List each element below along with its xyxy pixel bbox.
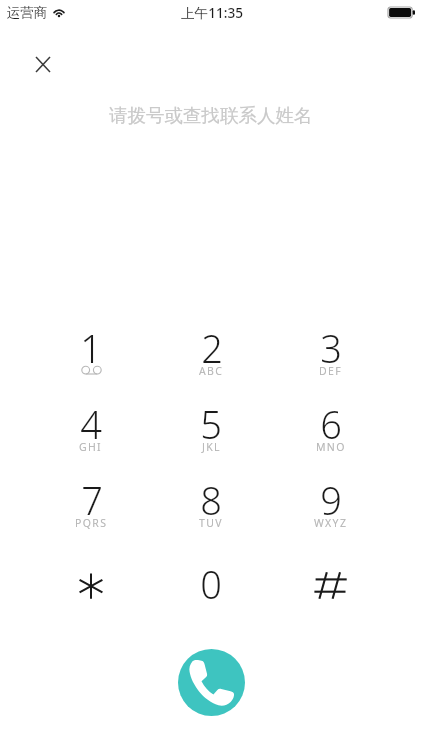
staticText: 5 (200, 398, 222, 450)
staticText: WXYZ (314, 516, 348, 530)
staticText: 2 (201, 322, 223, 374)
button[interactable]: 3 DEF (271, 322, 391, 396)
staticText: 8 (200, 474, 222, 526)
button[interactable]: 6 MNO (271, 398, 391, 472)
staticText: 运营商 (7, 4, 48, 21)
staticText: 请拨号或查找联系人姓名 (109, 104, 313, 127)
button[interactable]: 0 (151, 558, 271, 632)
staticText: 0 (200, 558, 222, 610)
staticText: 1 (80, 322, 102, 374)
staticText: ABC (199, 364, 224, 378)
button[interactable]: Close (20, 42, 65, 87)
button[interactable]: 9 WXYZ (271, 474, 391, 548)
button[interactable]: 5 JKL (151, 398, 271, 472)
staticText: 9 (320, 474, 342, 526)
staticText: TUV (199, 516, 223, 530)
staticText: MNO (316, 440, 346, 454)
staticText: GHI (79, 440, 103, 454)
staticText: 上午11:35 (181, 3, 243, 22)
staticText: 6 (320, 398, 342, 450)
button[interactable]: Star (31, 558, 151, 632)
button[interactable]: Call (178, 649, 245, 716)
staticText: 3 (320, 322, 342, 374)
button[interactable]: 8 TUV (151, 474, 271, 548)
staticText: JKL (202, 440, 221, 454)
button[interactable]: 1 (31, 322, 151, 396)
button[interactable]: 7 PQRS (31, 474, 151, 548)
button[interactable]: Pound (271, 558, 391, 632)
staticText: 4 (80, 398, 102, 450)
button[interactable]: 2 ABC (151, 322, 271, 396)
button[interactable]: 4 GHI (31, 398, 151, 472)
staticText: DEF (319, 364, 343, 378)
staticText: 7 (81, 474, 103, 526)
staticText: PQRS (75, 516, 108, 530)
